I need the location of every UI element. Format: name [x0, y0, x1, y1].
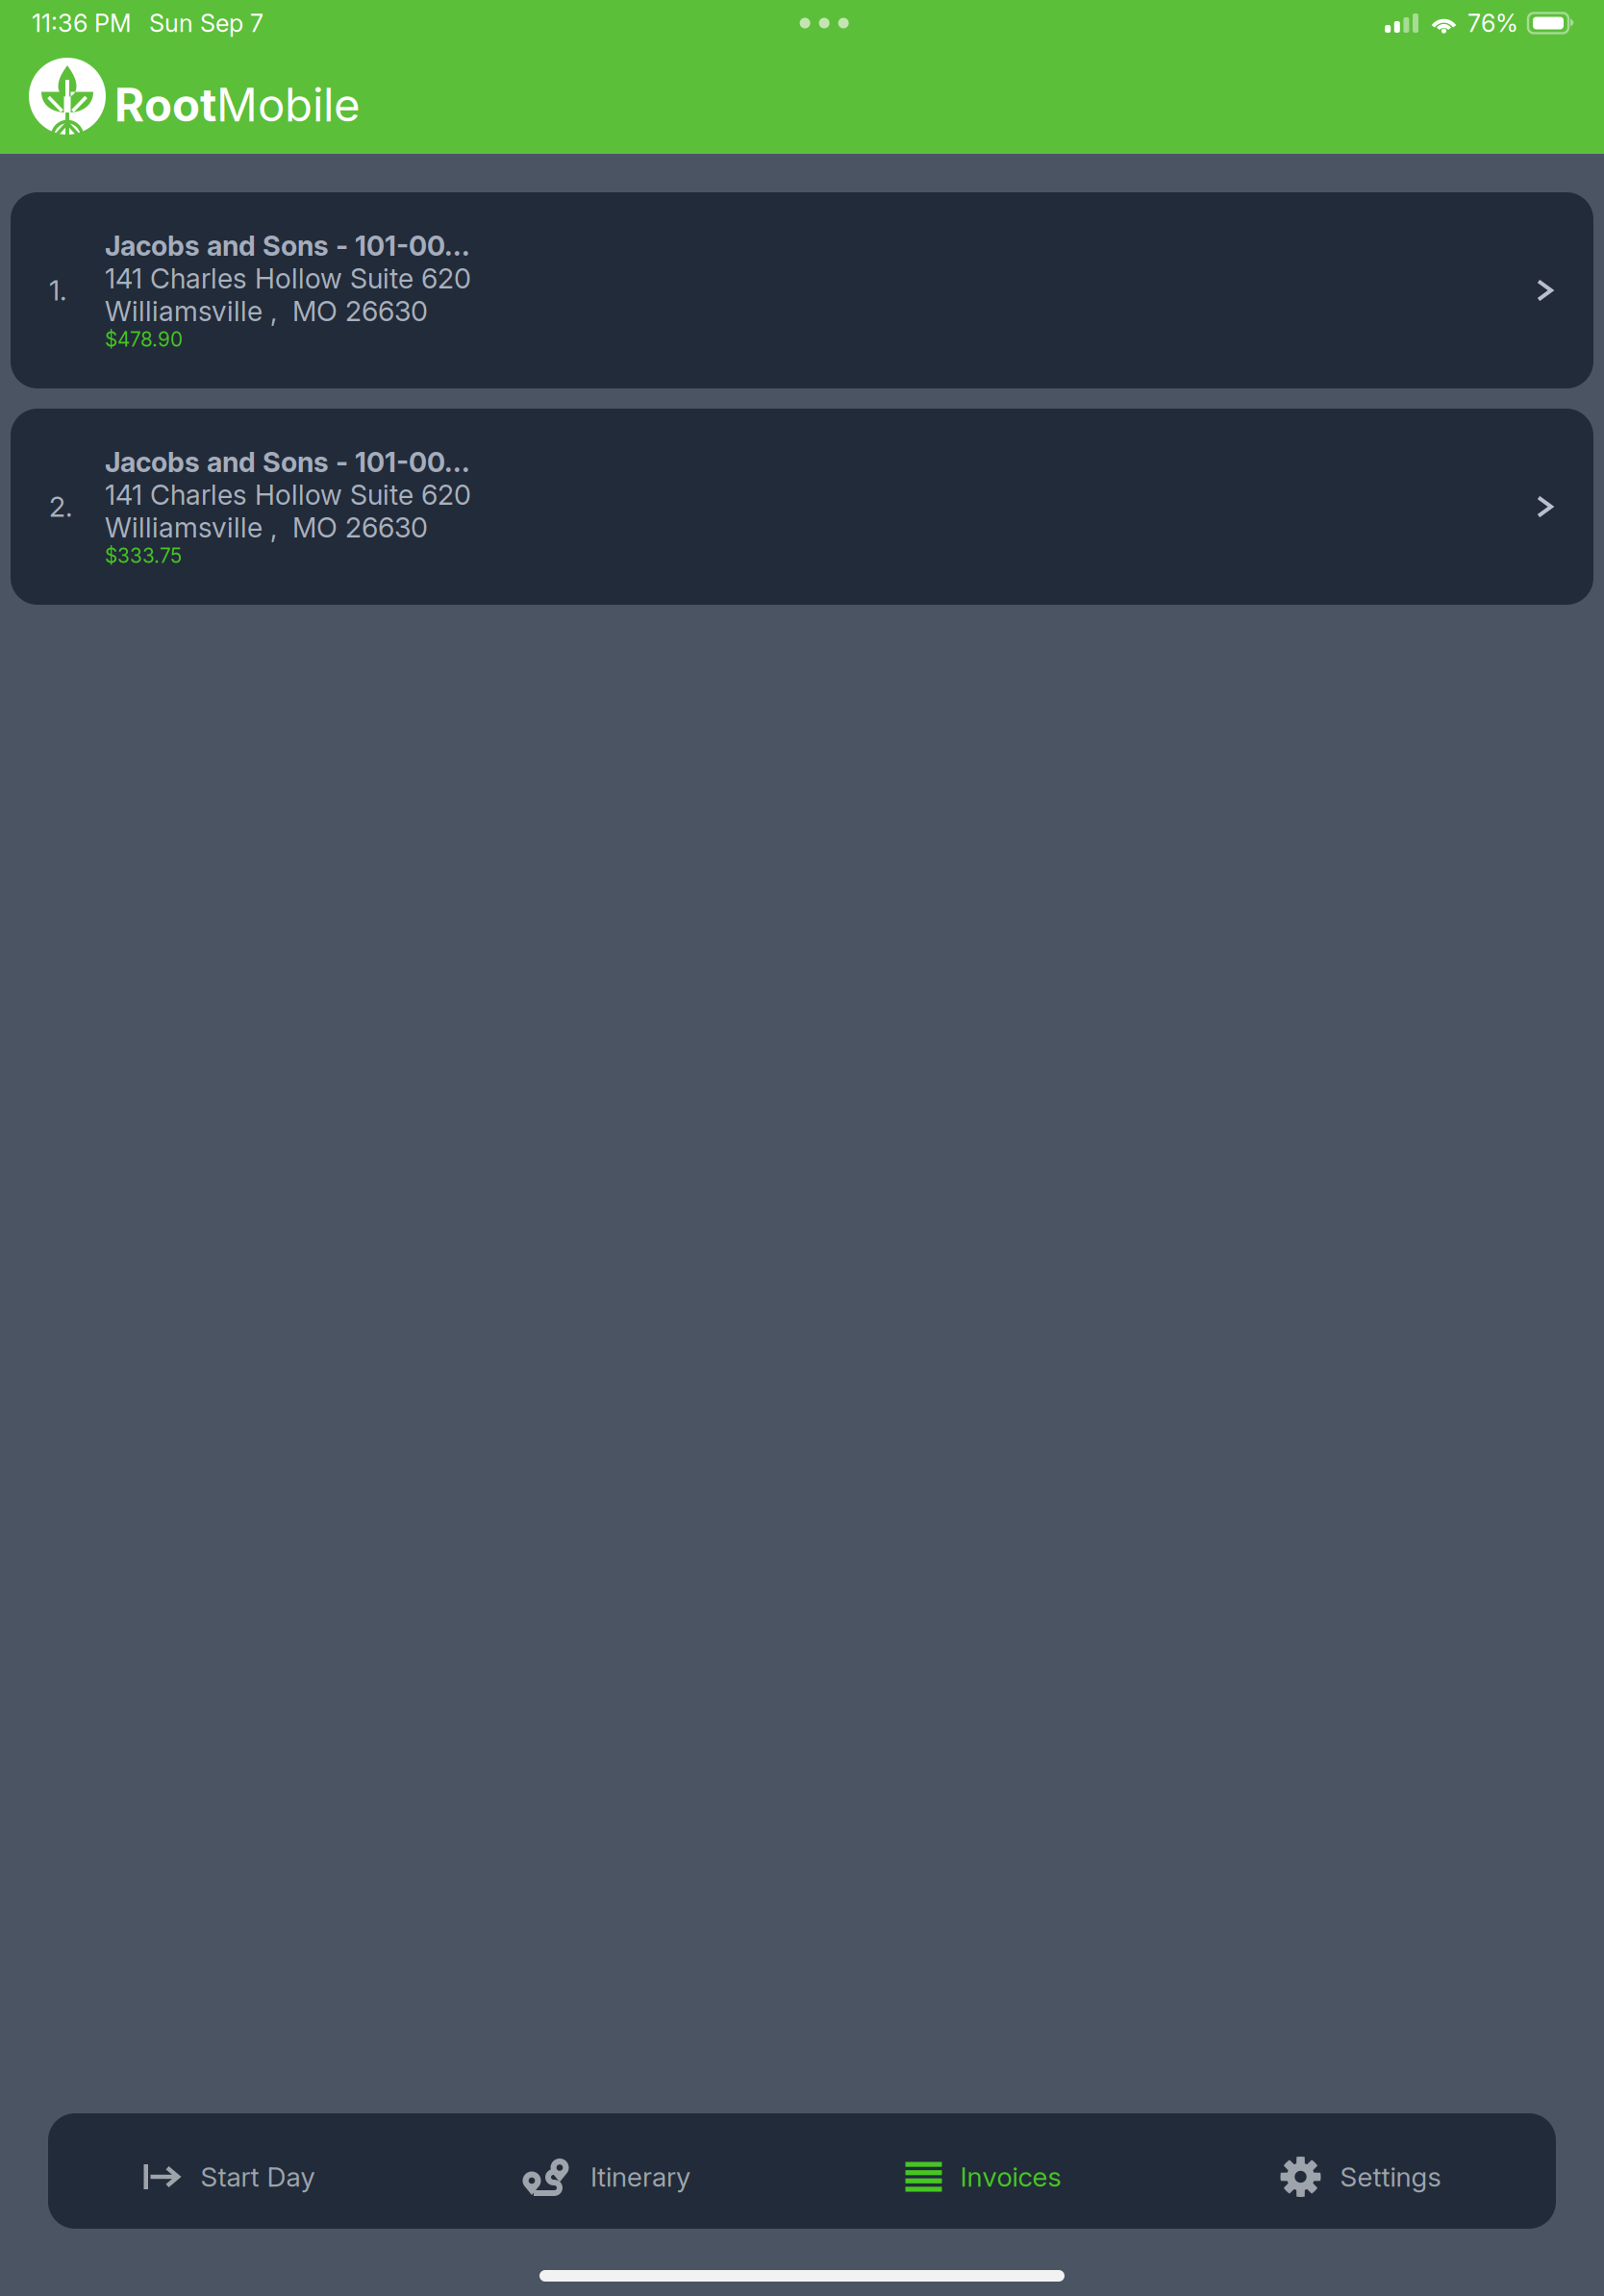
staticText: Sun Sep 7: [149, 8, 263, 38]
staticText: $478.90: [105, 327, 183, 351]
button[interactable]: 2.: [11, 409, 1593, 605]
staticText: Settings: [1340, 2161, 1441, 2193]
staticText: 76%: [1467, 8, 1518, 38]
button[interactable]: 1.: [11, 192, 1593, 388]
staticText: 1.: [49, 274, 66, 307]
button[interactable]: Invoices: [802, 2113, 1179, 2229]
staticText: 141 Charles Hollow Suite 620: [105, 262, 471, 295]
staticText: Williamsville , MO 26630: [105, 294, 428, 328]
button[interactable]: Itinerary: [425, 2113, 802, 2229]
staticText: 2.: [49, 490, 72, 523]
staticText: $333.75: [105, 544, 182, 568]
staticText: Williamsville , MO 26630: [105, 511, 428, 544]
staticText: 11:36 PM: [32, 8, 132, 38]
staticText: Invoices: [960, 2161, 1061, 2193]
staticText: 141 Charles Hollow Suite 620: [105, 478, 471, 511]
staticText: Jacobs and Sons - 101-00...: [105, 229, 470, 262]
button[interactable]: Start Day: [48, 2113, 425, 2229]
staticText: Start Day: [200, 2161, 315, 2193]
staticText: Mobile: [216, 77, 361, 132]
staticText: Itinerary: [590, 2161, 690, 2193]
staticText: Jacobs and Sons - 101-00...: [105, 445, 470, 479]
staticText: Root: [114, 77, 216, 132]
button[interactable]: Settings: [1179, 2113, 1556, 2229]
